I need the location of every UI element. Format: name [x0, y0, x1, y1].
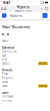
staticText: Region: [2, 76, 13, 80]
staticText: More: [2, 91, 9, 94]
staticText: State: [2, 84, 8, 88]
button[interactable]: Reload: [44, 5, 49, 11]
button[interactable]: Page settings: [1, 5, 7, 11]
staticText: Contact: [2, 99, 12, 102]
staticText: <: [40, 6, 42, 11]
button[interactable]: Option two: [7, 33, 9, 35]
staticText: Plan: [2, 72, 8, 76]
staticText: example.com: [15, 9, 31, 13]
staticText: Status: [2, 62, 9, 65]
staticText: Reports: [9, 13, 22, 18]
staticText: Active: [39, 84, 47, 88]
staticText: Renewal: [2, 95, 13, 98]
button[interactable]: Option one: [2, 33, 4, 35]
staticText: Sales: [2, 39, 8, 43]
staticText: Signed up: [2, 50, 17, 53]
staticText: First: [2, 58, 7, 61]
staticText: Last: [2, 54, 6, 57]
staticText: Seats: [2, 80, 8, 84]
staticText: Active: [39, 62, 47, 65]
button[interactable]: New: [42, 13, 50, 18]
staticText: Details: [2, 68, 12, 72]
staticText: Your Business: [2, 24, 30, 29]
button[interactable]: App: [0, 13, 6, 18]
staticText: 9:41: [3, 0, 10, 5]
staticText: Reports: [16, 4, 29, 9]
staticText: ..ıl: [40, 0, 44, 5]
staticText: Overview: [2, 46, 14, 49]
staticText: AA: [1, 6, 7, 11]
button[interactable]: Share: [39, 5, 44, 11]
